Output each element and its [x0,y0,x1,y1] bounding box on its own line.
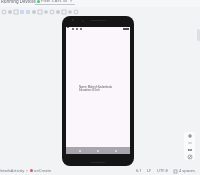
staticText: Education: B.Tech [79,88,100,92]
button[interactable]: Home [94,147,102,154]
button[interactable]: Back [37,9,43,15]
button[interactable]: 6:1 [136,168,142,173]
staticText: Pixel 3 API 30 [41,0,68,4]
button[interactable]: Actual size [186,146,193,153]
button[interactable]: Volume up [7,9,13,15]
button[interactable]: LF [147,168,152,173]
button[interactable]: Running Devices [1,0,36,4]
button[interactable]: Home [43,9,49,15]
button[interactable]: More [67,9,73,15]
button[interactable]: DetailsActivity [0,168,52,173]
button[interactable]: Zoom out [186,139,193,146]
button[interactable]: 4 spaces [179,168,196,173]
button[interactable]: Snapshot [31,9,37,15]
button[interactable]: Zoom in [186,132,193,139]
button[interactable]: Fold [55,9,61,15]
button[interactable]: Fit to screen [186,153,193,160]
staticText: Name: Mahesh Kadambala [79,85,112,89]
button[interactable]: Back [76,147,84,154]
staticText: × [70,0,73,4]
button[interactable]: Settings [61,9,67,15]
button[interactable]: Recents [112,147,120,154]
button[interactable]: Overview [49,9,55,15]
staticText: onCreate [34,168,52,173]
button[interactable]: UTF-8 [157,168,168,173]
button[interactable]: Volume down [13,9,19,15]
staticText: > [26,168,29,173]
button[interactable]: Rotate left [19,9,25,15]
button[interactable]: Indent settings [173,169,177,173]
button[interactable]: Screenshot [25,9,31,15]
button[interactable]: Power [1,9,7,15]
button[interactable]: Device manager [73,9,79,15]
staticText: DetailsActivity [0,168,25,173]
button[interactable]: Pixel 3 API 30 [37,0,73,4]
